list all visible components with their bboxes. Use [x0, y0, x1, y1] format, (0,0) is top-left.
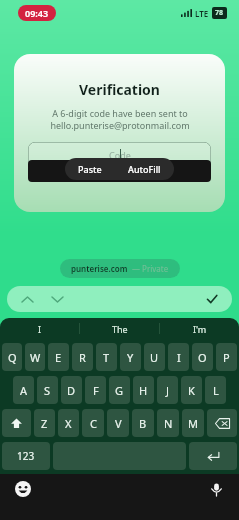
- staticText: E: [55, 350, 62, 365]
- button[interactable]: L: [205, 376, 226, 404]
- button[interactable]: G: [109, 376, 130, 404]
- button[interactable]: Next field: [47, 289, 67, 309]
- button[interactable]: Dictation: [205, 478, 227, 500]
- button[interactable]: P: [216, 343, 237, 371]
- staticText: K: [188, 383, 195, 398]
- staticText: X: [65, 416, 72, 431]
- button[interactable]: AutoFill: [115, 158, 174, 180]
- staticText: Verification: [79, 80, 160, 99]
- staticText: T: [103, 350, 110, 365]
- staticText: — Private: [132, 263, 169, 274]
- button[interactable]: B: [132, 409, 154, 437]
- staticText: 09:43: [25, 7, 49, 19]
- button[interactable]: D: [61, 376, 82, 404]
- button[interactable]: E: [48, 343, 69, 371]
- staticText: A 6-digit code have been sent to hello.p…: [50, 107, 190, 132]
- staticText: The: [112, 323, 128, 335]
- button[interactable]: 123: [2, 442, 50, 470]
- staticText: punterise.com: [71, 263, 128, 274]
- button[interactable]: W: [25, 343, 45, 371]
- staticText: U: [150, 350, 159, 365]
- button[interactable]: U: [144, 343, 165, 371]
- staticText: AutoFill: [128, 163, 161, 175]
- button[interactable]: Y: [120, 343, 141, 371]
- button[interactable]: R: [72, 343, 93, 371]
- button[interactable]: V: [107, 409, 129, 437]
- staticText: Paste: [78, 163, 102, 175]
- staticText: A: [20, 383, 28, 398]
- button[interactable]: K: [181, 376, 202, 404]
- button[interactable]: Paste: [65, 158, 115, 180]
- button[interactable]: F: [85, 376, 106, 404]
- staticText: J: [166, 383, 170, 398]
- staticText: W: [30, 350, 41, 365]
- staticText: M: [188, 416, 198, 431]
- staticText: I: [177, 350, 181, 365]
- staticText: N: [164, 416, 173, 431]
- button[interactable]: I'm: [160, 318, 239, 339]
- button[interactable]: X: [58, 409, 79, 437]
- button[interactable]: Code: [28, 142, 211, 168]
- staticText: V: [115, 416, 122, 431]
- button[interactable]: The: [80, 318, 159, 339]
- staticText: Code: [109, 149, 131, 161]
- staticText: O: [198, 350, 207, 365]
- button[interactable]: Z: [34, 409, 55, 437]
- button[interactable]: Return: [189, 442, 237, 470]
- button[interactable]: I: [168, 343, 189, 371]
- button[interactable]: S: [37, 376, 58, 404]
- button[interactable]: Key: [207, 409, 237, 437]
- button[interactable]: A: [13, 376, 34, 404]
- button[interactable]: punterise.com: [60, 259, 180, 278]
- button[interactable]: H: [133, 376, 154, 404]
- button[interactable]: N: [157, 409, 179, 437]
- button[interactable]: T: [96, 343, 117, 371]
- staticText: L: [213, 383, 219, 398]
- staticText: F: [93, 383, 99, 398]
- staticText: S: [44, 383, 51, 398]
- staticText: LTE: [195, 8, 209, 19]
- staticText: Z: [41, 416, 48, 431]
- button[interactable]: Previous field: [17, 289, 37, 309]
- staticText: P: [223, 350, 230, 365]
- button[interactable]: Emoji: [12, 478, 34, 500]
- staticText: I'm: [193, 323, 207, 335]
- staticText: H: [139, 383, 148, 398]
- staticText: 123: [17, 449, 35, 463]
- staticText: Y: [127, 350, 134, 365]
- staticText: B: [139, 416, 147, 431]
- staticText: Q: [8, 350, 17, 365]
- button[interactable]: O: [192, 343, 213, 371]
- staticText: D: [67, 383, 76, 398]
- button[interactable]: M: [182, 409, 204, 437]
- staticText: I: [38, 323, 42, 335]
- button[interactable]: I: [0, 318, 79, 339]
- staticText: R: [79, 350, 86, 365]
- button[interactable]: C: [82, 409, 104, 437]
- button[interactable]: Q: [2, 343, 22, 371]
- staticText: C: [90, 416, 97, 431]
- staticText: G: [115, 383, 124, 398]
- button[interactable]: Done: [202, 289, 222, 309]
- staticText: 78: [215, 8, 224, 18]
- button[interactable]: Key: [2, 409, 31, 437]
- button[interactable]: J: [157, 376, 178, 404]
